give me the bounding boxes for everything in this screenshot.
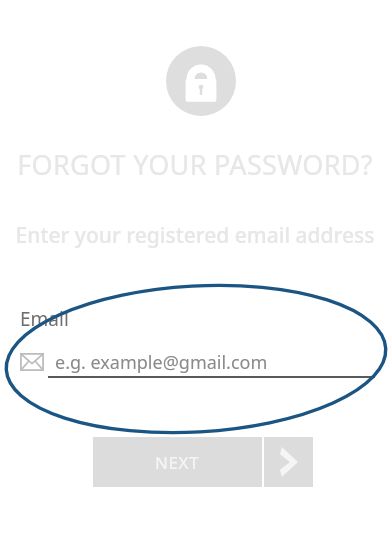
button[interactable]: NEXT <box>93 437 313 487</box>
staticText: Email <box>20 306 69 332</box>
staticText: FORGOT YOUR PASSWORD? <box>0 146 390 183</box>
staticText: e.g. example@gmail.com <box>55 350 268 375</box>
button[interactable]: e.g. example@gmail.com <box>20 344 376 380</box>
staticText: Enter your registered email address <box>0 221 390 250</box>
staticText: NEXT <box>155 451 200 474</box>
other: Next <box>264 437 313 487</box>
